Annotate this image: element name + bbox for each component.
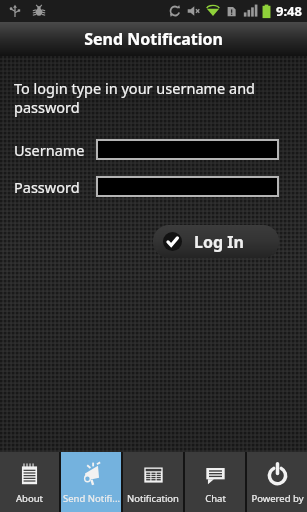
button[interactable]: Notification xyxy=(123,452,183,512)
button[interactable]: Chat xyxy=(185,452,245,512)
staticText: 9:48 xyxy=(276,2,302,20)
button[interactable]: About xyxy=(0,452,59,512)
staticText: Notification xyxy=(127,492,179,505)
staticText: Log In xyxy=(194,231,244,253)
staticText: About xyxy=(16,492,43,505)
staticText: Password xyxy=(14,177,96,197)
staticText: Send Notifi... xyxy=(63,492,120,505)
button[interactable]: Send Notifi... xyxy=(61,452,121,512)
staticText: Powered by xyxy=(251,492,304,505)
button[interactable]: Powered by xyxy=(247,452,307,512)
staticText: To login type in your username and passw… xyxy=(14,78,279,117)
staticText: Chat xyxy=(205,492,226,505)
staticText: Username xyxy=(14,140,96,160)
button[interactable]: Log In xyxy=(153,225,279,258)
staticText: Send Notification xyxy=(84,28,223,50)
